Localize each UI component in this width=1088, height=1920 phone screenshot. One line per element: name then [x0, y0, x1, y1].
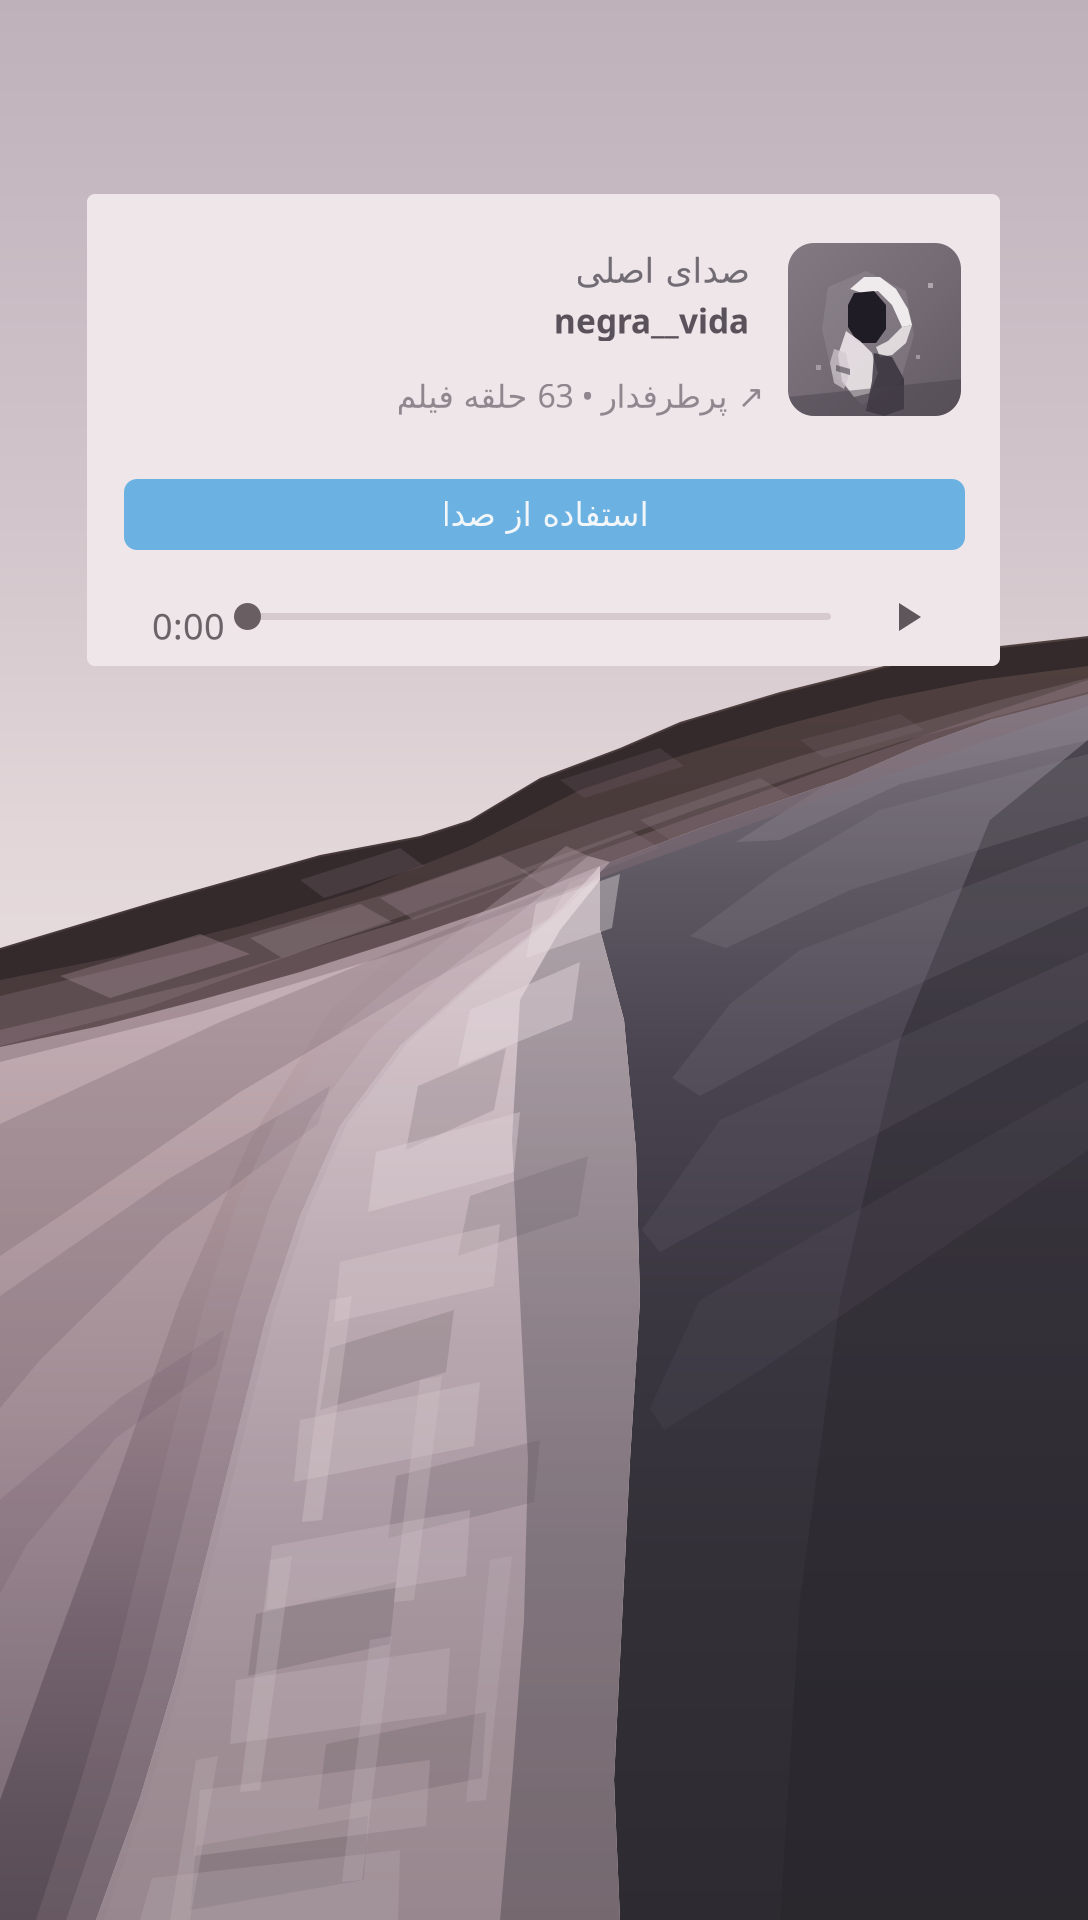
staticText: 0:00 — [152, 602, 225, 650]
staticText: negra__vida — [554, 298, 749, 343]
staticText: ↗ پرطرفدار • 63 حلقه فیلم — [396, 374, 764, 416]
staticText: صدای اصلی — [575, 251, 749, 290]
staticText: استفاده از صدا — [441, 496, 648, 533]
button[interactable]: Play — [893, 597, 927, 637]
button[interactable]: استفاده از صدا — [124, 479, 965, 550]
